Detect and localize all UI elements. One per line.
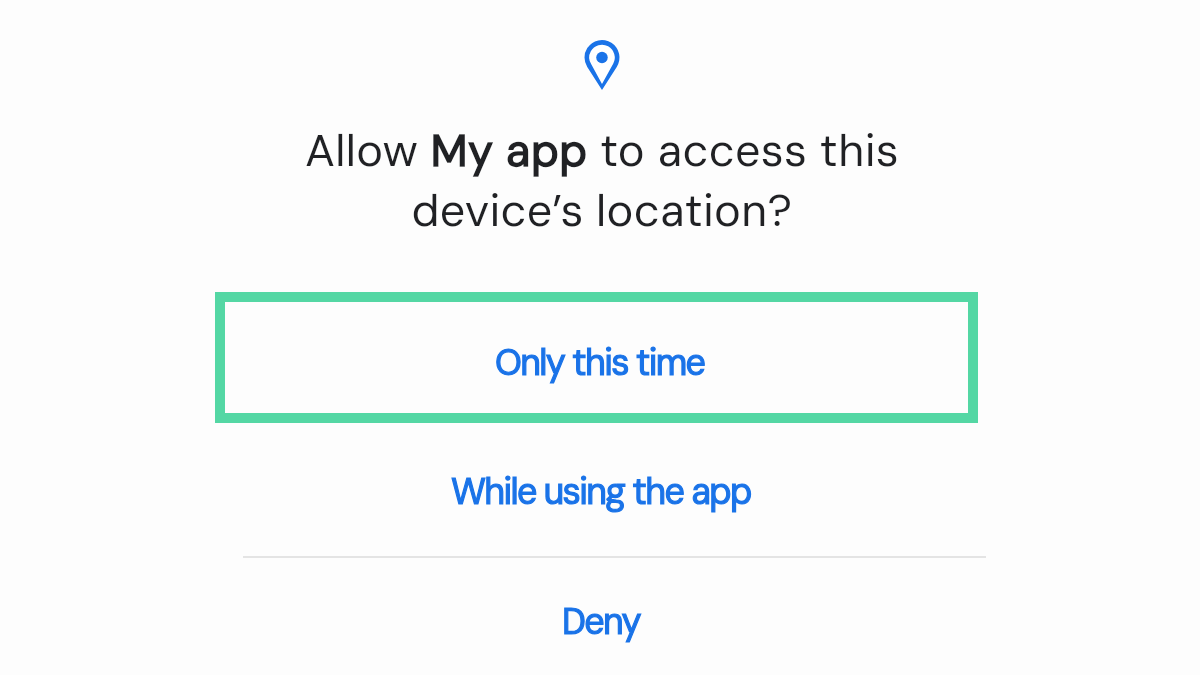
staticText: While using the app <box>451 468 751 515</box>
staticText: Allow My app to access this device’s loc… <box>152 121 1052 240</box>
button[interactable]: While using the app <box>451 458 751 524</box>
staticText: Deny <box>562 598 640 645</box>
staticText: Deny <box>562 598 640 645</box>
staticText: Only this time <box>495 339 705 386</box>
staticText: While using the app <box>451 468 751 515</box>
staticText: Only this time <box>495 339 705 386</box>
button[interactable]: Deny <box>562 588 640 654</box>
button[interactable]: Only this time <box>215 292 978 423</box>
